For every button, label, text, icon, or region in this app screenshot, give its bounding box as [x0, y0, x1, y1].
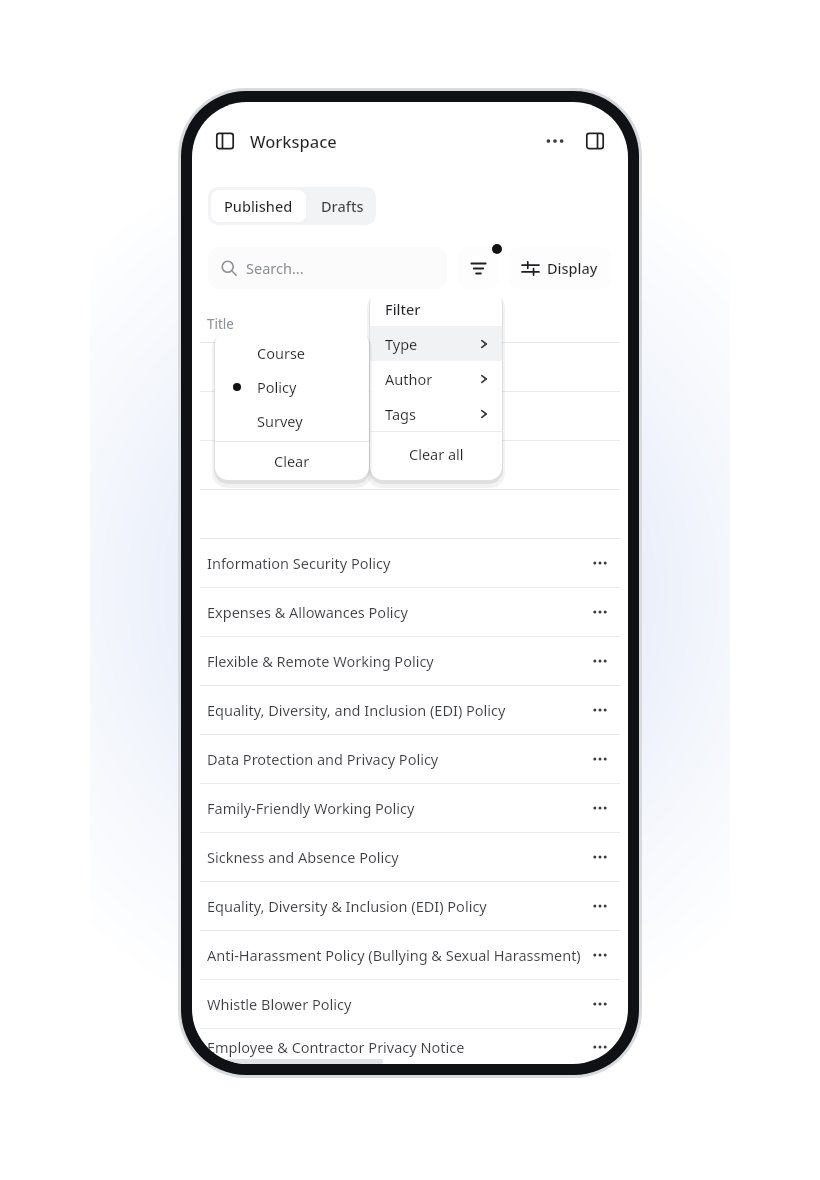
staticText: Family-Friendly Working Policy	[207, 798, 587, 818]
staticText: Workspace	[250, 130, 337, 152]
staticText: Sickness and Absence Policy	[207, 847, 587, 867]
staticText: Clear all	[409, 444, 464, 464]
button[interactable]: Row actions	[587, 599, 613, 625]
staticText: Clear	[274, 451, 310, 471]
staticText: Type	[385, 334, 418, 354]
button[interactable]: Information Security Policy	[200, 539, 620, 587]
button[interactable]: Row actions	[587, 1034, 613, 1060]
button[interactable]: Employee & Contractor Privacy Notice	[200, 1029, 620, 1064]
staticText: Whistle Blower Policy	[207, 994, 587, 1014]
button[interactable]: Author	[370, 361, 502, 396]
button[interactable]: Row actions	[587, 844, 613, 870]
staticText: Course	[257, 343, 306, 363]
button[interactable]: Row actions	[587, 697, 613, 723]
button[interactable]: Filter	[457, 247, 499, 289]
staticText: Published	[224, 196, 293, 216]
button[interactable]	[200, 441, 620, 489]
button[interactable]	[200, 343, 620, 391]
button[interactable]: Row actions	[587, 893, 613, 919]
button[interactable]: Family-Friendly Working Policy	[200, 784, 620, 832]
button[interactable]: Survey	[215, 404, 369, 438]
staticText: Tags	[385, 404, 416, 424]
staticText: Survey	[257, 411, 303, 431]
button[interactable]: Display	[508, 247, 612, 289]
staticText: Equality, Diversity & Inclusion (EDI) Po…	[207, 896, 587, 916]
button[interactable]: Policy	[215, 370, 369, 404]
button[interactable]: Toggle right sidebar	[578, 124, 612, 158]
button[interactable]: Anti-Harassment Policy (Bullying & Sexua…	[200, 931, 620, 979]
button[interactable]: Equality, Diversity & Inclusion (EDI) Po…	[200, 882, 620, 930]
staticText: Employee & Contractor Privacy Notice	[207, 1037, 587, 1057]
staticText: Drafts	[321, 196, 364, 216]
button[interactable]: More options	[538, 124, 572, 158]
button[interactable]: Type	[370, 326, 502, 361]
button[interactable]: Clear	[215, 442, 369, 480]
staticText: Search...	[246, 258, 304, 278]
button[interactable]: Data Protection and Privacy Policy	[200, 735, 620, 783]
button[interactable]: Whistle Blower Policy	[200, 980, 620, 1028]
staticText: Information Security Policy	[207, 553, 587, 573]
staticText: Author	[385, 369, 433, 389]
staticText: Display	[547, 258, 598, 278]
button[interactable]: Row actions	[587, 942, 613, 968]
button[interactable]: Published	[211, 190, 306, 222]
staticText: Data Protection and Privacy Policy	[207, 749, 587, 769]
staticText: Expenses & Allowances Policy	[207, 602, 587, 622]
button[interactable]: Flexible & Remote Working Policy	[200, 637, 620, 685]
button[interactable]: Course	[215, 336, 369, 370]
button[interactable]: Row actions	[587, 746, 613, 772]
button[interactable]: Expenses & Allowances Policy	[200, 588, 620, 636]
button[interactable]: Drafts	[309, 187, 376, 225]
staticText: Policy	[257, 377, 297, 397]
button[interactable]: Search...	[208, 247, 447, 289]
button[interactable]: Toggle left sidebar	[208, 124, 242, 158]
staticText: Flexible & Remote Working Policy	[207, 651, 587, 671]
staticText: Filter	[385, 299, 421, 319]
button[interactable]	[200, 392, 620, 440]
staticText: Equality, Diversity, and Inclusion (EDI)…	[207, 700, 587, 720]
button[interactable]: Row actions	[587, 991, 613, 1017]
button[interactable]: Row actions	[587, 795, 613, 821]
button[interactable]: Tags	[370, 396, 502, 431]
button[interactable]: Clear all	[370, 432, 502, 475]
button[interactable]: Sickness and Absence Policy	[200, 833, 620, 881]
button[interactable]: Row actions	[587, 550, 613, 576]
button[interactable]: Equality, Diversity, and Inclusion (EDI)…	[200, 686, 620, 734]
button[interactable]: Row actions	[587, 648, 613, 674]
staticText: Anti-Harassment Policy (Bullying & Sexua…	[207, 945, 587, 965]
staticText: Title	[207, 315, 234, 333]
